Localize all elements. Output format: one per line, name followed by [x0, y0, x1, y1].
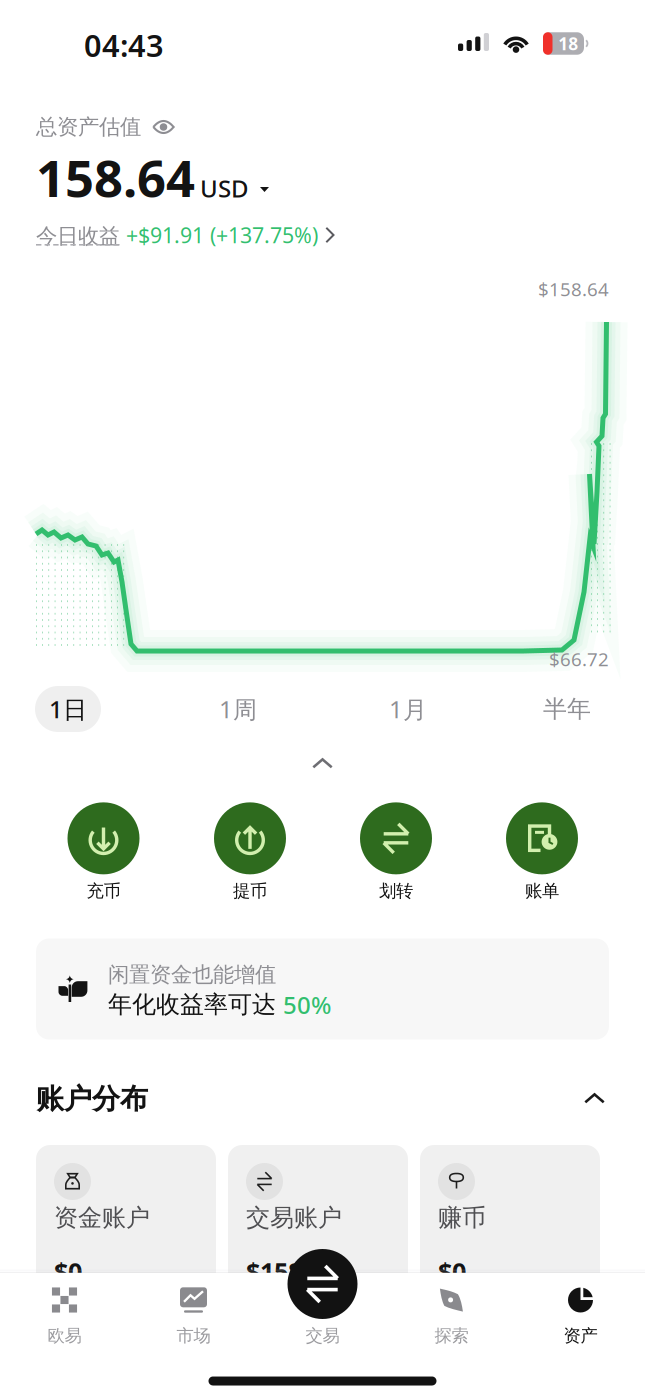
button[interactable]: 市场 — [129, 1273, 258, 1391]
staticText: 1月 — [389, 693, 427, 725]
staticText: USD — [200, 172, 249, 204]
button[interactable]: 欧易 — [0, 1273, 129, 1391]
staticText: 50% — [283, 989, 331, 1021]
button[interactable]: 收起账户分布 — [574, 1085, 609, 1113]
button[interactable]: 交易 — [287, 1249, 357, 1319]
button[interactable]: 1周 — [205, 686, 271, 732]
button[interactable]: 账单 — [477, 799, 607, 905]
staticText: $158.64 — [538, 277, 609, 301]
button[interactable]: 提币 — [185, 799, 315, 905]
staticText: 账户分布 — [36, 1082, 148, 1116]
button[interactable]: 充币 — [38, 799, 168, 905]
button[interactable]: 今日收益 — [36, 221, 335, 249]
staticText: 年化收益率可达 — [108, 990, 283, 1019]
button[interactable]: 总资产估值 — [36, 114, 175, 140]
staticText: $66.72 — [549, 647, 609, 671]
button[interactable]: 划转 — [331, 799, 461, 905]
staticText: +$91.91 (+137.75%) — [120, 221, 318, 249]
staticText: 1周 — [219, 693, 257, 725]
staticText: 半年 — [543, 694, 591, 724]
button[interactable]: 收起图表 — [298, 744, 347, 784]
staticText: 闲置资金也能增值 — [108, 961, 276, 988]
button[interactable]: 半年 — [534, 686, 600, 732]
staticText: 划转 — [379, 880, 413, 902]
button[interactable]: 资产 — [516, 1273, 645, 1391]
staticText: $158 — [246, 1254, 302, 1288]
button[interactable]: USD — [195, 172, 269, 211]
staticText: 探索 — [434, 1325, 468, 1346]
staticText: 市场 — [176, 1325, 210, 1346]
staticText: 04:43 — [84, 25, 164, 65]
button[interactable]: 1月 — [375, 686, 441, 732]
staticText: 今日收益 — [36, 223, 120, 249]
staticText: 欧易 — [47, 1325, 81, 1346]
staticText: 资产 — [563, 1325, 597, 1346]
staticText: 资金账户 — [54, 1203, 150, 1232]
staticText: 提币 — [233, 880, 267, 902]
button[interactable]: 交易账户 — [228, 1145, 408, 1320]
staticText: $0 — [438, 1254, 466, 1288]
staticText: 18 — [558, 32, 578, 55]
staticText: 充币 — [86, 880, 120, 902]
button[interactable]: 资金账户 — [36, 1145, 216, 1320]
staticText: 交易 — [305, 1325, 339, 1346]
staticText: $0 — [54, 1254, 82, 1288]
staticText: 赚币 — [438, 1203, 486, 1232]
staticText: 账单 — [525, 880, 559, 902]
button[interactable]: 1日 — [35, 686, 101, 732]
button[interactable]: 闲置资金也能增值 — [36, 938, 609, 1039]
button[interactable]: 交易 — [258, 1273, 387, 1391]
staticText: 总资产估值 — [36, 114, 141, 140]
button[interactable]: 探索 — [387, 1273, 516, 1391]
button[interactable]: 赚币 — [420, 1145, 600, 1320]
staticText: 158.64 — [36, 144, 195, 211]
staticText: 交易账户 — [246, 1203, 342, 1232]
staticText: 1日 — [49, 693, 87, 725]
